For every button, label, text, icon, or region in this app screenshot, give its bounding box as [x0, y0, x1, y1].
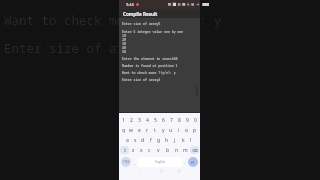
- button[interactable]: 6: [159, 115, 167, 125]
- staticText: k: [182, 137, 185, 144]
- staticText: t: [154, 127, 156, 134]
- button[interactable]: 5: [151, 115, 159, 125]
- staticText: English: [155, 160, 166, 164]
- button[interactable]: 9: [183, 115, 191, 125]
- button[interactable]: e: [135, 125, 143, 135]
- staticText: h: [165, 137, 169, 144]
- button[interactable]: Shift: [120, 146, 129, 154]
- staticText: i: [178, 127, 180, 134]
- staticText: w: [129, 127, 133, 134]
- button[interactable]: n: [172, 145, 181, 155]
- staticText: ,: [134, 160, 136, 165]
- staticText: Enter 5 integer value one by one: [122, 30, 184, 34]
- staticText: 2: [130, 117, 133, 124]
- staticText: o: [185, 127, 189, 134]
- staticText: m: [183, 147, 188, 154]
- button[interactable]: j: [171, 135, 179, 145]
- staticText: y: [162, 127, 165, 134]
- button[interactable]: 4: [143, 115, 151, 125]
- button[interactable]: g: [155, 135, 163, 145]
- staticText: 7: [170, 117, 173, 124]
- staticText: ⌫: [192, 148, 198, 153]
- button[interactable]: ?123: [121, 157, 131, 167]
- staticText: Want to check more ?(y/n) : y: [4, 12, 222, 29]
- staticText: g: [157, 137, 161, 144]
- staticText: Compile Result: [123, 11, 158, 17]
- staticText: ⇧: [123, 148, 127, 153]
- button[interactable]: c: [145, 145, 154, 155]
- button[interactable]: 1: [120, 115, 127, 125]
- staticText: c: [148, 147, 151, 154]
- button[interactable]: o: [183, 125, 191, 135]
- button[interactable]: English: [138, 157, 182, 167]
- button[interactable]: w: [127, 125, 135, 135]
- button[interactable]: Recents: [176, 168, 182, 174]
- button[interactable]: l: [187, 135, 195, 145]
- staticText: .: [184, 160, 186, 165]
- button[interactable]: Period: [182, 157, 188, 167]
- button[interactable]: f: [147, 135, 155, 145]
- button[interactable]: Comma: [131, 157, 138, 167]
- button[interactable]: z: [129, 145, 137, 155]
- staticText: v: [157, 147, 160, 154]
- button[interactable]: 2: [127, 115, 135, 125]
- button[interactable]: 3: [135, 115, 143, 125]
- button[interactable]: r: [143, 125, 151, 135]
- staticText: Want to check more ?(y/n): y: [122, 71, 176, 75]
- staticText: Enter size of array5: [122, 22, 161, 26]
- staticText: j: [174, 137, 176, 144]
- button[interactable]: d: [139, 135, 147, 145]
- staticText: l: [190, 137, 192, 144]
- staticText: e: [138, 127, 141, 134]
- button[interactable]: a: [124, 135, 131, 145]
- button[interactable]: 8: [175, 115, 183, 125]
- staticText: d: [141, 137, 145, 144]
- button[interactable]: b: [163, 145, 172, 155]
- staticText: b: [166, 147, 170, 154]
- staticText: Enter size of array4: [122, 78, 161, 82]
- staticText: 0: [194, 117, 197, 124]
- button[interactable]: x: [137, 145, 145, 155]
- button[interactable]: Enter: [188, 157, 198, 167]
- staticText: 8: [178, 117, 181, 124]
- staticText: r: [146, 127, 149, 134]
- button[interactable]: Backspace: [190, 146, 199, 154]
- button[interactable]: s: [131, 135, 139, 145]
- staticText: n: [175, 147, 179, 154]
- button[interactable]: 7: [167, 115, 175, 125]
- staticText: 3: [138, 117, 141, 124]
- button[interactable]: i: [175, 125, 183, 135]
- staticText: a: [126, 137, 129, 144]
- button[interactable]: 0: [191, 115, 199, 125]
- staticText: s: [134, 137, 137, 144]
- staticText: 9:46: [126, 2, 134, 7]
- staticText: ↵: [191, 160, 195, 165]
- staticText: Enter the element to search10: [122, 57, 178, 61]
- staticText: f: [150, 137, 152, 144]
- button[interactable]: Home: [158, 168, 164, 174]
- staticText: q: [122, 127, 126, 134]
- staticText: 1: [122, 117, 125, 124]
- button[interactable]: m: [181, 145, 190, 155]
- button[interactable]: y: [159, 125, 167, 135]
- staticText: 4: [146, 117, 149, 124]
- button[interactable]: p: [191, 125, 199, 135]
- button[interactable]: Back: [137, 168, 143, 174]
- staticText: 30: [122, 42, 126, 46]
- staticText: 40: [122, 46, 126, 50]
- button[interactable]: u: [167, 125, 175, 135]
- staticText: 6: [162, 117, 165, 124]
- staticText: p: [193, 127, 197, 134]
- staticText: 5: [154, 117, 157, 124]
- button[interactable]: h: [163, 135, 171, 145]
- button[interactable]: q: [120, 125, 127, 135]
- staticText: 9: [186, 117, 189, 124]
- staticText: Number is found at position 1: [122, 64, 178, 68]
- staticText: ?123: [123, 160, 130, 164]
- staticText: x: [140, 147, 143, 154]
- button[interactable]: v: [154, 145, 163, 155]
- staticText: 50: [122, 50, 126, 54]
- button[interactable]: t: [151, 125, 159, 135]
- button[interactable]: k: [179, 135, 187, 145]
- staticText: Enter size of array: [4, 40, 147, 57]
